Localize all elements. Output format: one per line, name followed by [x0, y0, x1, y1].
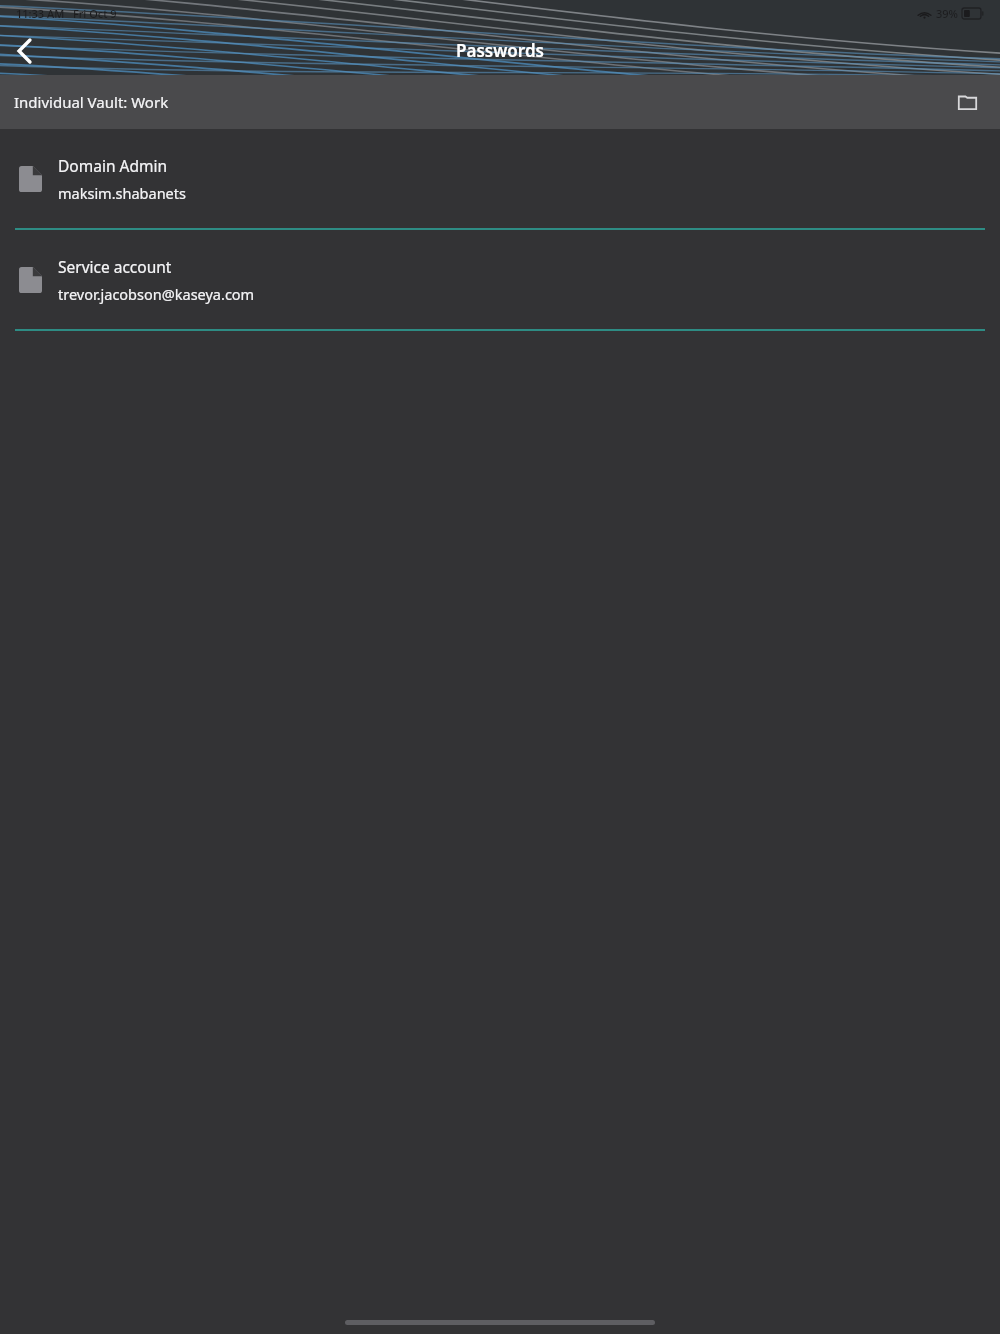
staticText: Passwords	[0, 39, 1000, 62]
button[interactable]: Individual Vault: Work	[0, 75, 1000, 129]
staticText: trevor.jacobson@kaseya.com	[58, 284, 255, 304]
staticText: Service account	[58, 256, 172, 277]
button[interactable]: Back	[0, 27, 48, 75]
staticText: Domain Admin	[58, 155, 167, 176]
button[interactable]: Folders	[952, 87, 982, 117]
button[interactable]: Domain Admin	[0, 129, 1000, 228]
button[interactable]: Service account	[0, 230, 1000, 329]
staticText: 39%	[936, 6, 958, 21]
staticText: maksim.shabanets	[58, 183, 186, 203]
staticText: Individual Vault: Work	[14, 92, 169, 112]
staticText: 11:33 AM Fri Oct 9	[16, 6, 117, 21]
